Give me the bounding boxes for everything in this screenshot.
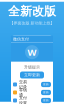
staticText: 更新 <box>43 83 49 86</box>
button[interactable]: 立即更新 <box>20 72 44 78</box>
staticText: W <box>27 46 36 58</box>
staticText: 交易记录 <box>19 80 27 89</box>
staticText: 更新 <box>43 91 49 94</box>
staticText: 【界面改版 新功能上线】 <box>9 21 54 26</box>
staticText: 零钱通 <box>19 88 27 97</box>
button[interactable]: 零钱通 <box>13 89 51 95</box>
staticText: 升级提示 <box>24 65 40 70</box>
staticText: 更新 <box>43 99 49 102</box>
button[interactable]: 支付设置 <box>13 97 51 103</box>
staticText: 全新改版 <box>8 4 56 19</box>
button[interactable]: 交易记录 <box>13 81 51 87</box>
staticText: 微信支付 <box>13 37 29 42</box>
staticText: 立即更新 <box>24 73 40 77</box>
staticText: 支付设置 <box>19 96 27 104</box>
